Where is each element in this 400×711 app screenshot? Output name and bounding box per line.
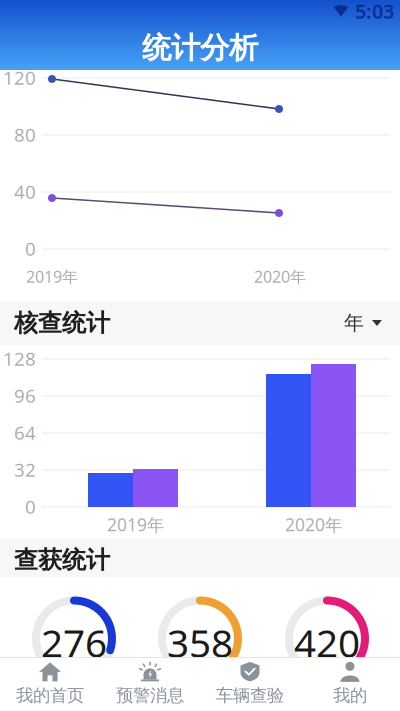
staticText: 查获统计 xyxy=(14,545,110,575)
staticText: 年 xyxy=(344,311,364,335)
staticText: 车辆查验 xyxy=(216,685,284,706)
staticText: 0 xyxy=(25,494,36,519)
staticText: 2020年 xyxy=(285,513,342,536)
staticText: 我的 xyxy=(333,685,367,706)
staticText: 2019年 xyxy=(26,266,78,287)
staticText: 80 xyxy=(14,122,36,147)
staticText: 5:03 xyxy=(355,0,394,24)
button[interactable]: 车辆查验 xyxy=(200,657,300,711)
button[interactable]: 年 xyxy=(340,301,386,345)
staticText: 40 xyxy=(14,179,36,204)
staticText: 358 xyxy=(167,617,233,668)
staticText: 统计分析 xyxy=(142,30,258,66)
staticText: 核查统计 xyxy=(14,308,110,338)
staticText: 64 xyxy=(14,420,36,445)
staticText: 0 xyxy=(25,236,36,261)
staticText: 128 xyxy=(3,346,36,371)
staticText: 2019年 xyxy=(107,513,164,536)
staticText: 120 xyxy=(3,65,36,90)
staticText: 预警消息 xyxy=(116,685,184,706)
button[interactable]: 我的首页 xyxy=(0,657,100,711)
button[interactable]: 预警消息 xyxy=(100,657,200,711)
staticText: 96 xyxy=(14,383,36,408)
staticText: 2020年 xyxy=(254,266,306,287)
staticText: 32 xyxy=(14,457,36,482)
staticText: 420 xyxy=(294,617,360,668)
button[interactable]: 我的 xyxy=(300,657,400,711)
staticText: 我的首页 xyxy=(16,685,84,706)
staticText: 276 xyxy=(41,617,107,668)
